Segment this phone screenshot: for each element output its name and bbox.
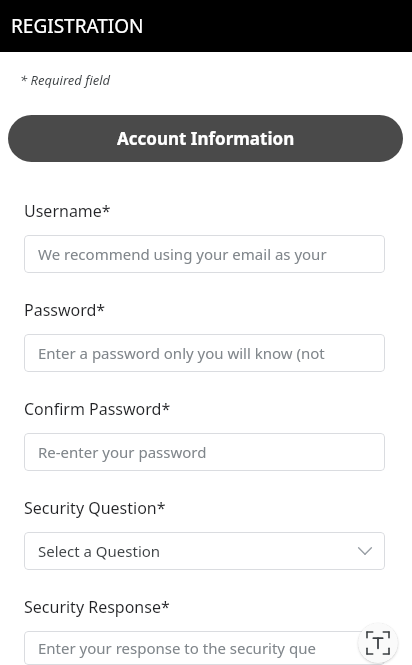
button[interactable]: Password*	[24, 334, 385, 372]
staticText: REGISTRATION	[11, 13, 144, 39]
staticText: Re-enter your password	[38, 442, 385, 462]
button[interactable]: Security Question*	[24, 532, 385, 570]
staticText: Enter your response to the security que	[38, 638, 385, 658]
button[interactable]: Account Information	[8, 115, 403, 162]
button[interactable]: Security Response*	[24, 631, 385, 665]
button[interactable]: Select text	[358, 623, 398, 663]
staticText: Username*	[24, 200, 111, 222]
staticText: Security Response*	[24, 596, 170, 618]
staticText: Account Information	[117, 127, 295, 150]
staticText: Security Question*	[24, 497, 166, 519]
staticText: Enter a password only you will know (not	[38, 343, 385, 363]
staticText: Select a Question	[38, 541, 355, 561]
button[interactable]: Username*	[24, 235, 385, 273]
button[interactable]: Confirm Password*	[24, 433, 385, 471]
staticText: * Required field	[20, 71, 111, 89]
staticText: We recommend using your email as your	[38, 244, 385, 264]
staticText: Password*	[24, 299, 106, 321]
staticText: Confirm Password*	[24, 398, 171, 420]
